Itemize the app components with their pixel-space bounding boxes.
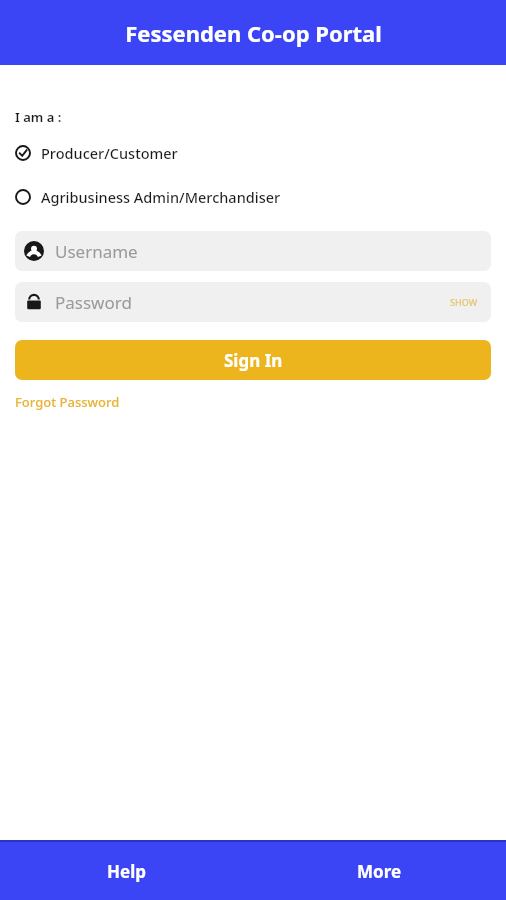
button[interactable]: More (253, 842, 506, 900)
staticText: Fessenden Co-op Portal (125, 18, 382, 48)
staticText: SHOW (450, 296, 478, 308)
button[interactable]: Producer/Customer (15, 140, 491, 166)
staticText: Agribusiness Admin/Merchandiser (41, 187, 281, 207)
staticText: Help (107, 860, 146, 883)
staticText: Username (55, 240, 138, 263)
button[interactable]: Forgot Password (15, 393, 120, 411)
staticText: Password (55, 291, 132, 314)
button[interactable]: Sign In (15, 340, 491, 380)
staticText: More (357, 860, 402, 883)
staticText: Forgot Password (15, 393, 120, 411)
staticText: I am a : (15, 108, 62, 126)
button[interactable]: Agribusiness Admin/Merchandiser (15, 184, 491, 210)
staticText: Sign In (224, 349, 283, 372)
button[interactable]: SHOW (446, 290, 482, 314)
staticText: Producer/Customer (41, 143, 178, 163)
button[interactable]: Password (15, 282, 491, 322)
button[interactable]: Username (15, 231, 491, 271)
button[interactable]: Help (0, 842, 253, 900)
